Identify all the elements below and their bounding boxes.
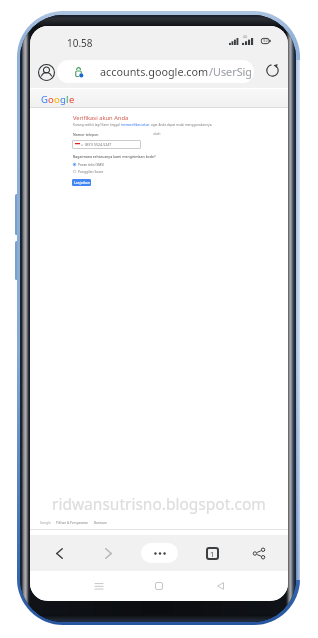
staticText: Lanjutkan [74, 180, 90, 185]
button[interactable]: Account [36, 62, 56, 82]
button[interactable]: Back [48, 542, 70, 564]
staticText: Nomor telepon [73, 132, 99, 137]
staticText: 10.58 [67, 36, 93, 50]
button[interactable]: Panggilan Suara [73, 169, 104, 173]
staticText: memverifikasi akun [121, 123, 151, 127]
button[interactable]: Reload [262, 60, 282, 80]
staticText: g [60, 93, 66, 106]
button[interactable]: Tabs [201, 542, 223, 564]
staticText: Google [40, 521, 51, 525]
staticText: Verifikasi akun Anda [73, 114, 129, 122]
button[interactable]: Pesan teks (SMS) [73, 162, 105, 166]
staticText: Panggilan Suara [78, 169, 104, 173]
staticText: o [54, 93, 60, 106]
button[interactable]: (831) 5524-5247 [72, 140, 141, 149]
staticText: /UserSig [209, 64, 252, 79]
button[interactable]: Home [148, 575, 170, 597]
button[interactable]: Recent apps [88, 575, 110, 597]
staticText: 4G [243, 35, 248, 39]
button[interactable]: Forward [97, 542, 119, 564]
staticText: accounts.google.com [100, 64, 209, 79]
staticText: ridwansutrisno.blogspot.com [52, 493, 266, 514]
staticText: agar Anda dapat mulai menggunakannya. [151, 123, 213, 127]
button[interactable]: accounts.google.com [57, 60, 254, 83]
staticText: Bagaimana seharusnya kami mengirimkan ko… [73, 154, 156, 159]
staticText: l [66, 93, 69, 106]
staticText: G [41, 93, 48, 106]
button[interactable]: More options [141, 543, 178, 563]
staticText: ubah [153, 132, 161, 136]
button[interactable]: Share [248, 542, 270, 564]
staticText: o [48, 93, 54, 106]
staticText: Kurang sedikit lagi! Kami tinggal [73, 123, 121, 127]
staticText: Pilihan & Persyaratan [56, 521, 89, 525]
button[interactable]: Lanjutkan [72, 179, 91, 186]
staticText: 1 [210, 549, 215, 559]
staticText: 92 [263, 38, 268, 44]
staticText: e [69, 93, 75, 106]
button[interactable]: Back [209, 575, 231, 597]
staticText: Bantuan [94, 521, 107, 525]
staticText: Pesan teks (SMS) [78, 162, 105, 166]
staticText: (831) 5524-5247 [85, 142, 112, 147]
